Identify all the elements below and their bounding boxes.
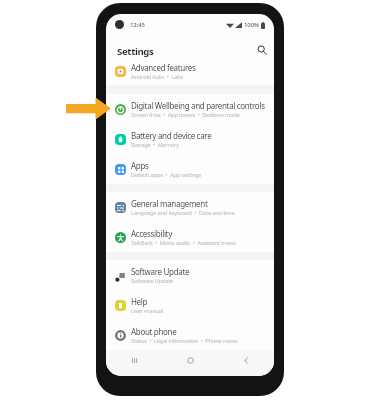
button[interactable]: General management xyxy=(106,192,274,222)
staticText: User manual xyxy=(131,307,164,315)
staticText: Language and keyboard • Date and time xyxy=(131,209,235,217)
button[interactable]: Advanced features xyxy=(106,58,274,85)
button[interactable]: Apps xyxy=(106,154,274,184)
staticText: Software Update xyxy=(131,277,174,285)
staticText: Apps xyxy=(131,160,149,171)
button[interactable]: Battery and device care xyxy=(106,124,274,154)
button[interactable]: About phone xyxy=(106,320,274,350)
staticText: General management xyxy=(131,198,208,209)
staticText: Advanced features xyxy=(131,62,196,73)
button[interactable]: Recents xyxy=(106,350,162,370)
staticText: Battery and device care xyxy=(131,130,212,141)
staticText: Screen time • App timers • Bedtime mode xyxy=(131,111,240,119)
button[interactable]: Accessibility xyxy=(106,222,274,252)
staticText: 12:45 xyxy=(130,21,145,29)
staticText: Status • Legal information • Phone name xyxy=(131,337,238,345)
staticText: About phone xyxy=(131,326,177,337)
staticText: Settings xyxy=(117,45,154,58)
staticText: TalkBack • Mono audio • Assistant menu xyxy=(131,239,236,247)
button[interactable]: Search xyxy=(255,43,268,56)
button[interactable]: Software Update xyxy=(106,260,274,290)
staticText: Android Auto • Labs xyxy=(131,73,184,81)
button[interactable]: Home xyxy=(162,350,218,370)
staticText: Software Update xyxy=(131,266,190,277)
staticText: Default apps • App settings xyxy=(131,171,202,179)
staticText: Digital Wellbeing and parental controls xyxy=(131,100,265,111)
button[interactable]: Back xyxy=(218,350,274,370)
button[interactable]: Help xyxy=(106,290,274,320)
staticText: Storage • Memory xyxy=(131,141,179,149)
staticText: 100% xyxy=(244,21,260,29)
staticText: Accessibility xyxy=(131,228,172,239)
staticText: Help xyxy=(131,296,148,307)
button[interactable]: Digital Wellbeing and parental controls xyxy=(106,94,274,124)
